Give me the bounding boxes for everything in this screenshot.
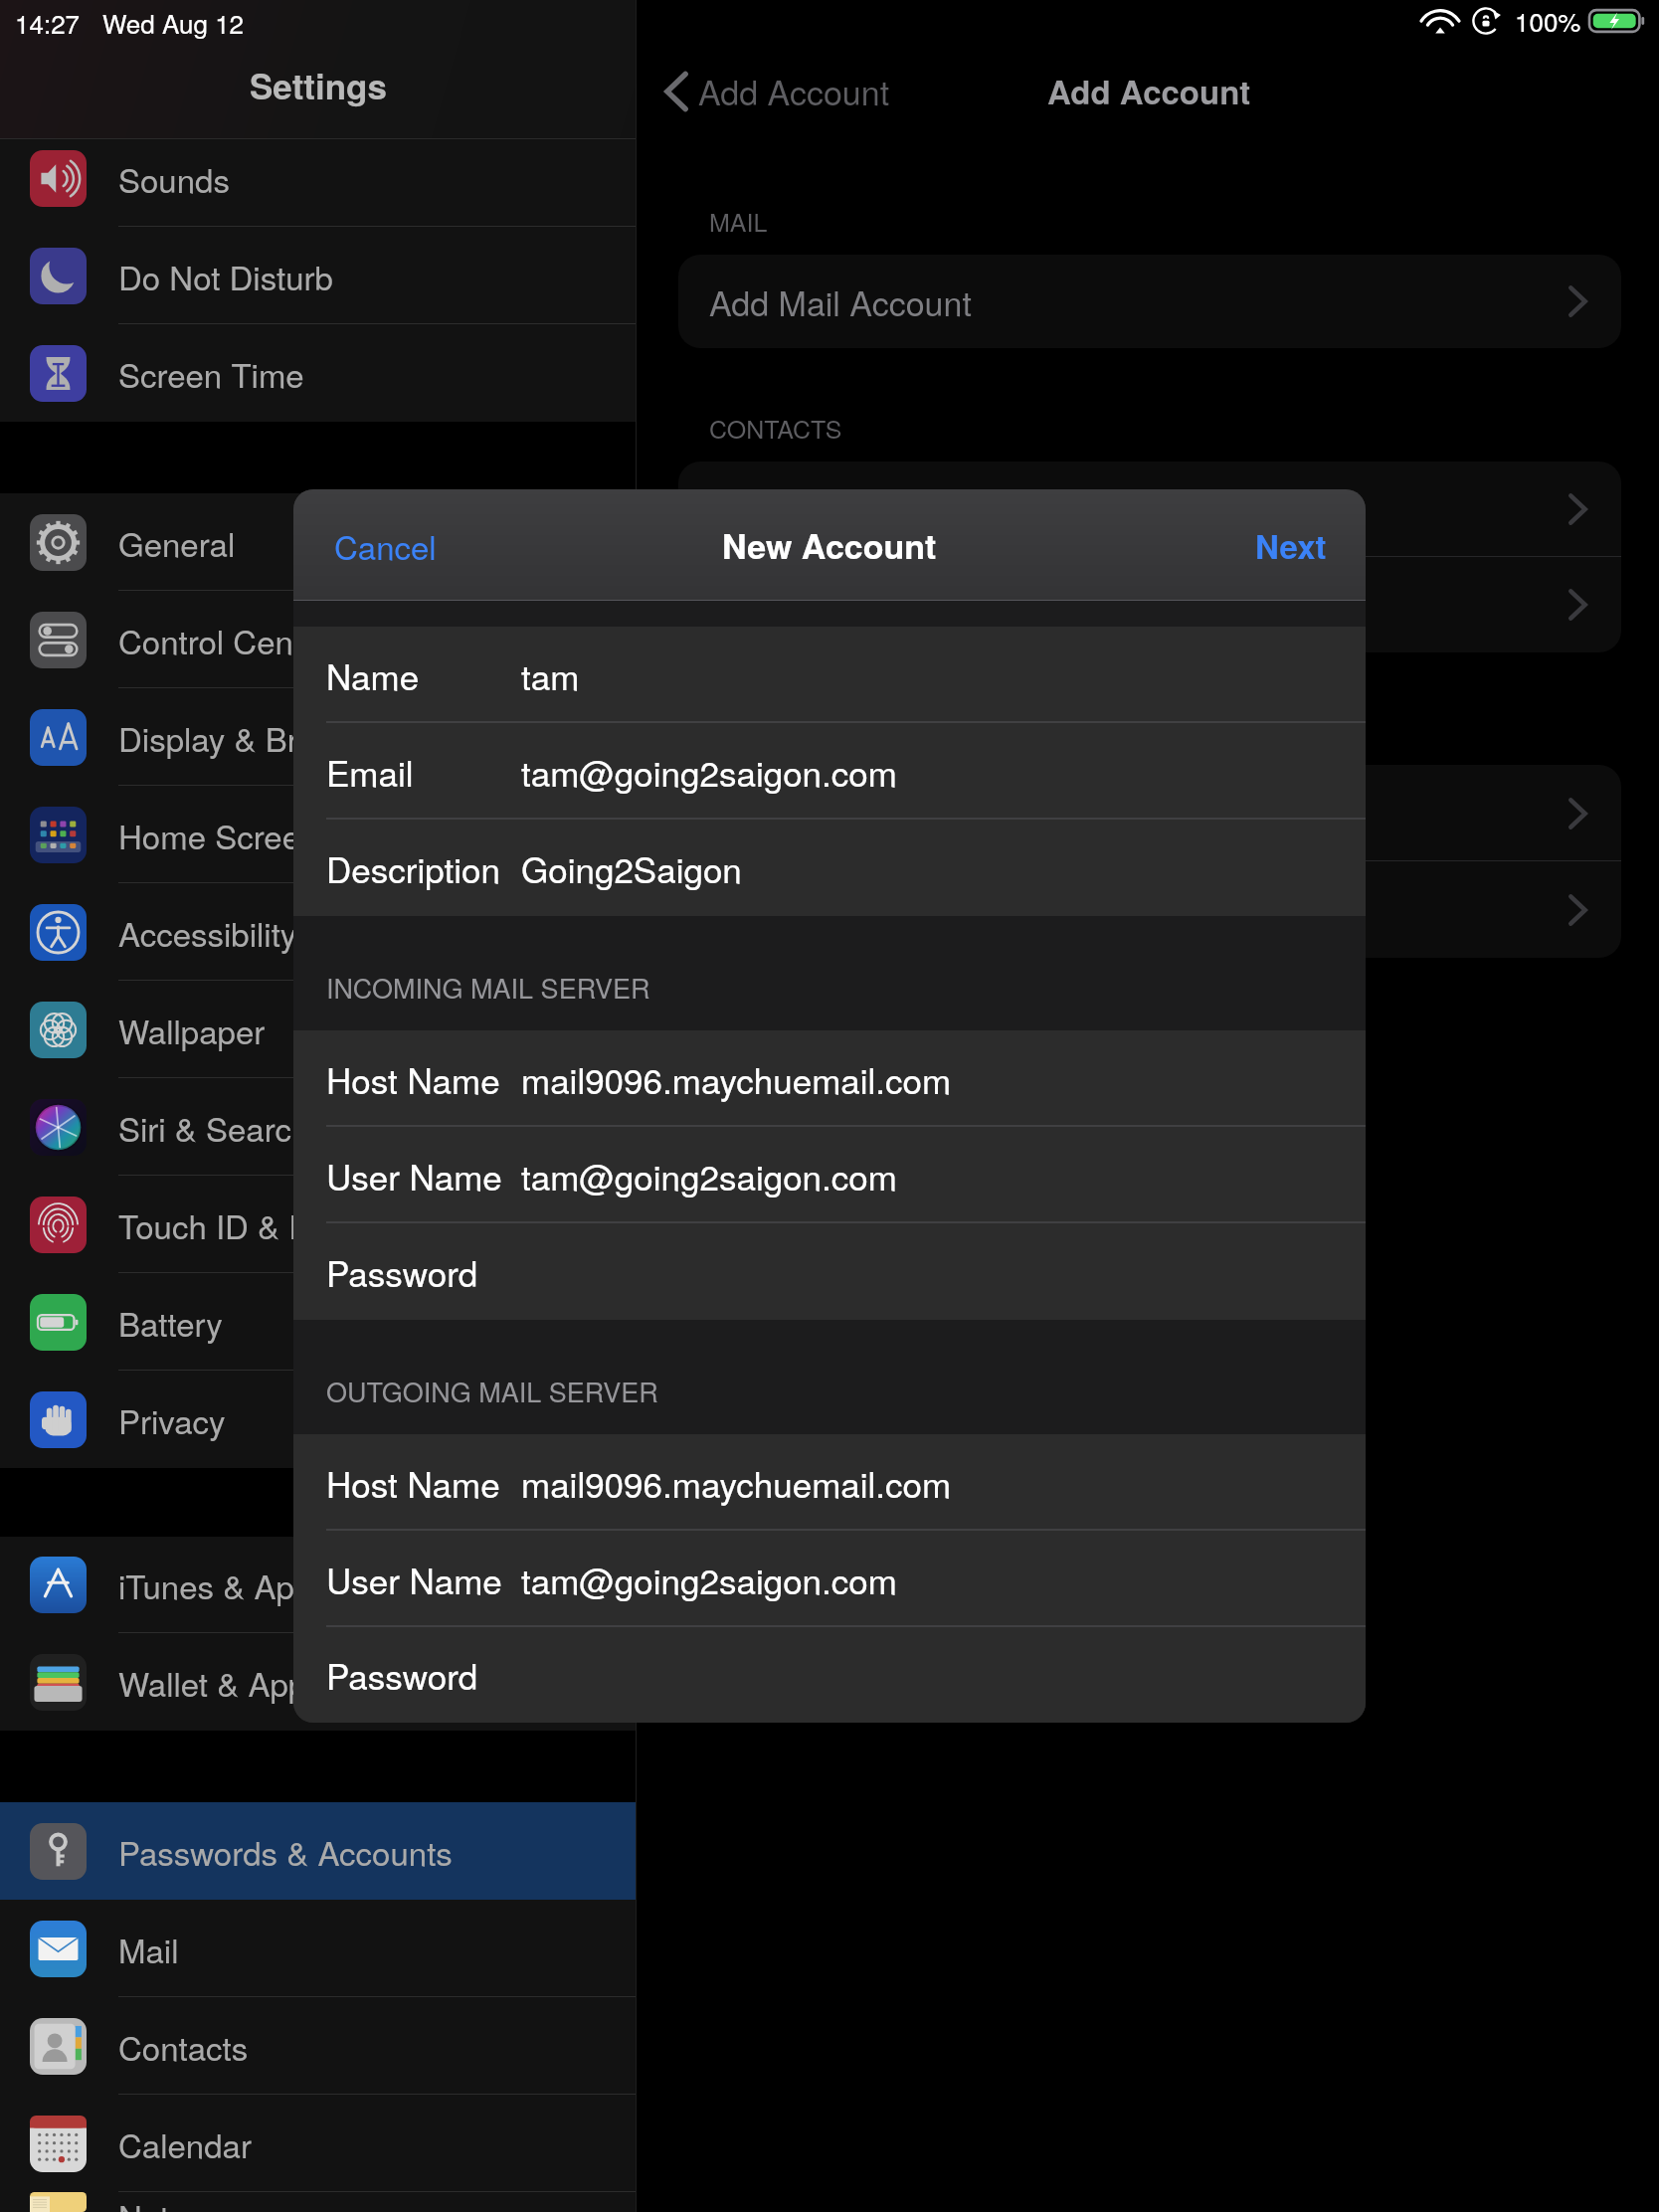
staticText: Password [326, 1247, 478, 1297]
staticText: Accessibility [118, 909, 297, 956]
button[interactable]: Add Mail Account [678, 255, 1621, 348]
staticText: Mail [118, 1926, 179, 1972]
staticText: Calendar [118, 2120, 252, 2167]
staticText: tam@going2saigon.com [521, 747, 897, 797]
button[interactable]: Control Center [0, 591, 637, 688]
staticText: Home Screen & Dock [118, 812, 435, 858]
staticText: Settings [250, 61, 387, 110]
staticText: Privacy [118, 1396, 226, 1443]
staticText: Contacts [118, 2023, 249, 2070]
staticText: 100% [1515, 2, 1581, 39]
button[interactable]: Battery [0, 1273, 637, 1371]
staticText: Host Name [326, 1054, 500, 1104]
staticText: Do Not Disturb [118, 253, 333, 299]
staticText: Wallet & Apple Pay [118, 1659, 396, 1706]
button[interactable]: Email [293, 723, 1366, 820]
button[interactable]: Next [1231, 508, 1366, 583]
staticText: 14:27 [15, 4, 81, 41]
button[interactable]: Passwords & Accounts [0, 1802, 637, 1900]
staticText: Host Name [326, 1458, 500, 1508]
staticText: Add Account [1047, 68, 1251, 114]
staticText: tam@going2saigon.com [521, 1555, 897, 1604]
button[interactable]: Screen Time [0, 324, 637, 422]
staticText: OUTGOING MAIL SERVER [326, 1372, 658, 1410]
button[interactable]: Privacy [0, 1371, 637, 1468]
button[interactable]: Back [637, 61, 904, 121]
staticText: tam@going2saigon.com [521, 1151, 897, 1200]
staticText: Add Mail Account [709, 277, 972, 326]
staticText: Passwords & Accounts [118, 1828, 453, 1875]
button[interactable]: Display & Brightness [0, 688, 637, 786]
button[interactable]: Touch ID & Passcode [0, 1176, 637, 1273]
button[interactable]: Accessibility [0, 883, 637, 981]
button[interactable]: Notes [0, 2192, 637, 2212]
staticText: Siri & Search [118, 1104, 310, 1151]
staticText: Touch ID & Passcode [118, 1201, 433, 1248]
staticText: Battery [118, 1299, 223, 1346]
staticText: Notes [118, 2192, 204, 2212]
staticText: Sounds [118, 155, 230, 202]
staticText: General [118, 519, 236, 566]
button[interactable]: Account option [678, 861, 1621, 958]
button[interactable]: Account option [678, 557, 1621, 652]
button[interactable]: Siri & Search [0, 1078, 637, 1176]
button[interactable]: Contacts [0, 1997, 637, 2095]
staticText: Going2Saigon [521, 843, 742, 893]
button[interactable]: Wallet & Apple Pay [0, 1633, 637, 1731]
staticText: tam [521, 650, 580, 700]
staticText: Wed Aug 12 [102, 4, 245, 41]
staticText: MAIL [709, 203, 768, 239]
button[interactable]: Password [293, 1223, 1366, 1320]
button[interactable]: Cancel [293, 508, 461, 583]
staticText: INCOMING MAIL SERVER [326, 968, 650, 1007]
button[interactable]: Account option [678, 765, 1621, 861]
button[interactable]: Calendar [0, 2095, 637, 2192]
staticText: Add Account [698, 67, 890, 115]
staticText: Display & Brightness [118, 714, 421, 761]
staticText: Email [326, 747, 414, 797]
staticText: New Account [722, 521, 937, 570]
staticText: iTunes & App Store [118, 1562, 400, 1608]
staticText: Wallpaper [118, 1007, 266, 1053]
button[interactable]: User Name [293, 1127, 1366, 1223]
button[interactable]: Password [293, 1627, 1366, 1723]
staticText: mail9096.maychuemail.com [521, 1054, 952, 1104]
staticText: Description [326, 843, 500, 893]
button[interactable]: Wallpaper [0, 981, 637, 1078]
button[interactable]: Home Screen & Dock [0, 786, 637, 883]
button[interactable]: Do Not Disturb [0, 227, 637, 324]
staticText: User Name [326, 1555, 502, 1604]
button[interactable]: Host Name [293, 1030, 1366, 1127]
button[interactable]: Sounds [0, 139, 637, 227]
staticText: Control Center [118, 617, 331, 663]
staticText: User Name [326, 1151, 502, 1200]
button[interactable]: Account option [678, 461, 1621, 557]
button[interactable]: Description [293, 820, 1366, 916]
staticText: Password [326, 1650, 478, 1700]
button[interactable]: User Name [293, 1531, 1366, 1627]
staticText: CONTACTS [709, 410, 842, 446]
button[interactable]: Name [293, 627, 1366, 723]
button[interactable]: Host Name [293, 1434, 1366, 1531]
staticText: Name [326, 650, 420, 700]
button[interactable]: iTunes & App Store [0, 1537, 637, 1633]
button[interactable]: General [0, 493, 637, 591]
staticText: mail9096.maychuemail.com [521, 1458, 952, 1508]
button[interactable]: Mail [0, 1900, 637, 1997]
staticText: Screen Time [118, 350, 304, 397]
